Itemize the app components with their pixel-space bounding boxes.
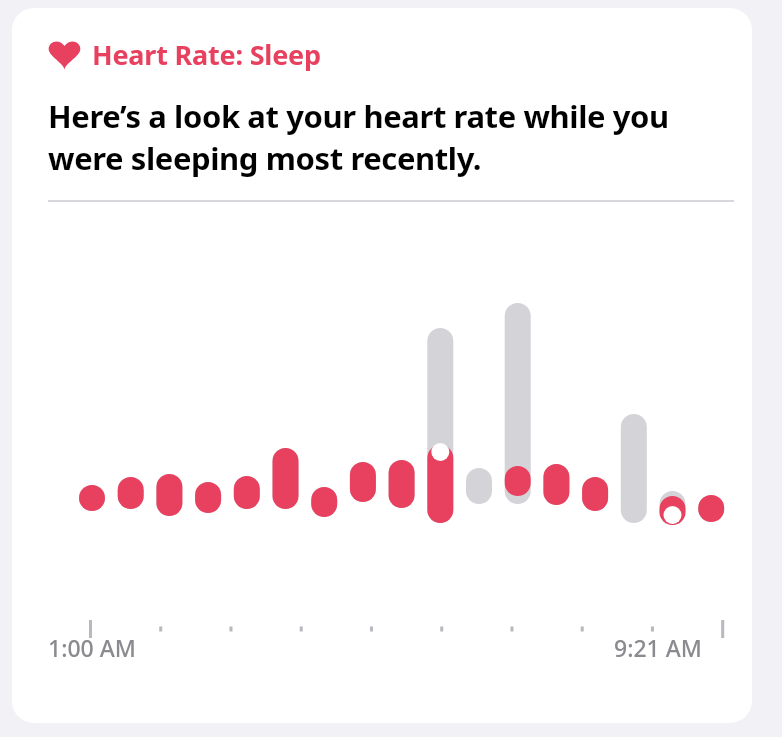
staticText: 9:21 AM <box>614 632 724 663</box>
other: Heart rate <box>48 40 81 70</box>
staticText: Heart Rate: Sleep <box>92 36 321 73</box>
button[interactable]: Heart rate <box>12 8 752 723</box>
staticText: 1:00 AM <box>48 632 136 663</box>
staticText: Here’s a look at your heart rate while y… <box>48 95 669 179</box>
